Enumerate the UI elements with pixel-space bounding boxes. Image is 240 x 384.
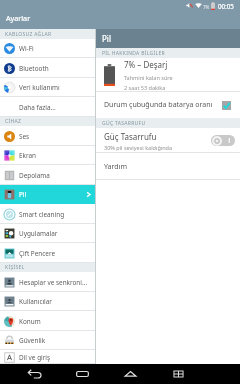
button[interactable]: Ekran xyxy=(0,146,95,165)
button[interactable]: Durum çubuğunda batarya oranı xyxy=(96,92,240,118)
button[interactable]: 7% – Deşarj xyxy=(96,58,240,92)
staticText: Güvenlik xyxy=(19,336,92,345)
staticText: 2 saat 53 dakika xyxy=(124,84,166,91)
staticText: 7% xyxy=(203,4,210,10)
staticText: Çift Pencere xyxy=(19,249,92,258)
staticText: KİŞİSEL xyxy=(5,264,25,271)
staticText: Depolama xyxy=(19,171,92,180)
button[interactable]: Back xyxy=(24,364,44,384)
button[interactable]: Veri kullanımı xyxy=(0,78,95,97)
button[interactable]: Kullanıcılar xyxy=(0,292,95,311)
button[interactable]: Wi-Fi xyxy=(0,39,95,58)
staticText: Pil xyxy=(102,33,111,44)
staticText: 00:05 xyxy=(218,2,234,10)
button[interactable]: Ses xyxy=(0,126,95,146)
staticText: Konum xyxy=(19,317,92,326)
button[interactable]: Yardım xyxy=(96,153,240,180)
staticText: Tahmini kalan süre xyxy=(124,74,173,81)
staticText: CİHAZ xyxy=(5,118,22,125)
staticText: 7% – Deşarj xyxy=(124,59,168,70)
button[interactable]: Recents xyxy=(72,364,92,384)
staticText: 30% pil seviyesi kaldığında xyxy=(104,144,173,151)
staticText: Ekran xyxy=(19,151,92,160)
staticText: Güç Tasarrufu xyxy=(104,131,157,142)
staticText: Daha fazla... xyxy=(19,103,92,112)
button[interactable]: Güç Tasarrufu xyxy=(96,128,240,153)
staticText: Uygulamalar xyxy=(19,229,92,238)
staticText: Dil ve giriş xyxy=(19,353,92,362)
staticText: Smart cleaning xyxy=(19,210,92,219)
button[interactable]: Uygulamalar xyxy=(0,224,95,243)
staticText: Veri kullanımı xyxy=(19,83,92,92)
button[interactable]: Home xyxy=(120,364,140,384)
staticText: Wi-Fi xyxy=(19,44,92,53)
button[interactable]: Depolama xyxy=(0,165,95,185)
staticText: Kullanıcılar xyxy=(19,297,92,306)
staticText: PİL HAKKINDA BİLGİLER xyxy=(102,50,165,57)
staticText: Bluetooth xyxy=(19,64,92,73)
staticText: Durum çubuğunda batarya oranı xyxy=(104,100,222,110)
staticText: Ses xyxy=(19,132,92,141)
button[interactable]: Konum xyxy=(0,311,95,331)
button[interactable]: Smart cleaning xyxy=(0,204,95,224)
button[interactable]: Menu xyxy=(168,364,188,384)
button[interactable]: Hesaplar ve senkroni... xyxy=(0,272,95,292)
staticText: Pil xyxy=(19,190,85,199)
button[interactable]: Dil ve giriş xyxy=(0,350,95,364)
button[interactable]: Daha fazla... xyxy=(0,97,95,117)
staticText: GÜÇ TASARRUFU xyxy=(102,120,146,127)
staticText: Yardım xyxy=(104,162,127,172)
button[interactable]: Pil xyxy=(0,185,95,204)
button[interactable]: Çift Pencere xyxy=(0,243,95,263)
staticText: KABLOSUZ AĞLAR xyxy=(5,31,52,38)
staticText: Hesaplar ve senkroni... xyxy=(19,278,92,287)
staticText: Ayarlar xyxy=(6,13,31,23)
button[interactable]: Bluetooth xyxy=(0,58,95,78)
button[interactable]: Güvenlik xyxy=(0,331,95,350)
